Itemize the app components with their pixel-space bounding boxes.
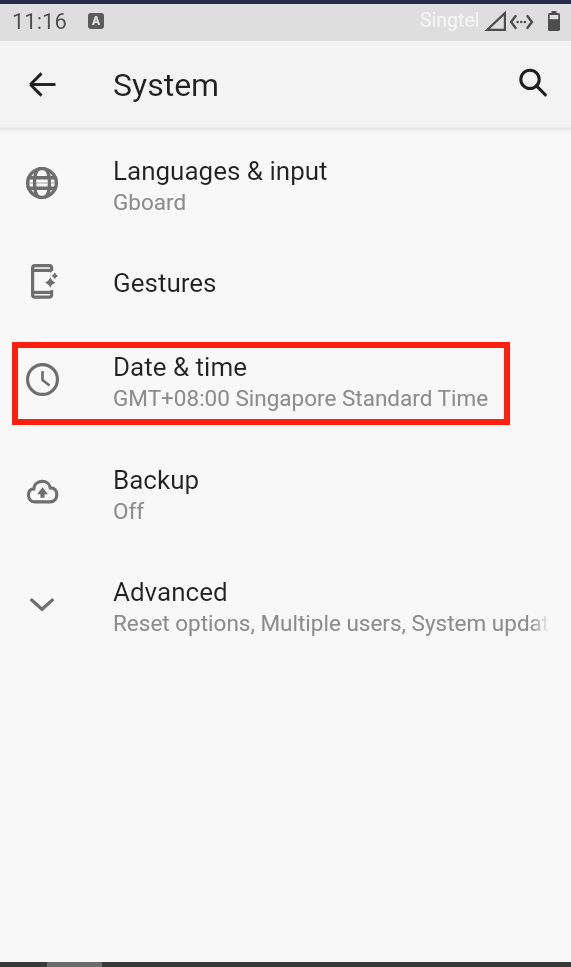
button[interactable]: Gestures [0, 239, 571, 323]
staticText: System [113, 66, 220, 104]
staticText: Backup [113, 465, 200, 495]
staticText: Reset options, Multiple users, System up… [113, 610, 550, 636]
button[interactable]: Advanced [0, 548, 571, 661]
staticText: GMT+08:00 Singapore Standard Time [113, 385, 550, 411]
button[interactable]: Backup [0, 436, 571, 548]
staticText: Date & time [113, 352, 247, 382]
button[interactable]: Date & time [0, 323, 571, 436]
button[interactable]: Languages & input [0, 128, 571, 239]
staticText: Gboard [113, 189, 550, 215]
staticText: Gestures [113, 268, 217, 298]
staticText: Advanced [113, 577, 228, 607]
staticText: A [92, 14, 101, 28]
staticText: Singtel [420, 9, 480, 32]
button[interactable]: Search [508, 57, 556, 105]
staticText: Languages & input [113, 156, 328, 186]
staticText: 11:16 [12, 9, 67, 35]
button[interactable]: Back [18, 60, 66, 108]
staticText: Off [113, 498, 550, 524]
